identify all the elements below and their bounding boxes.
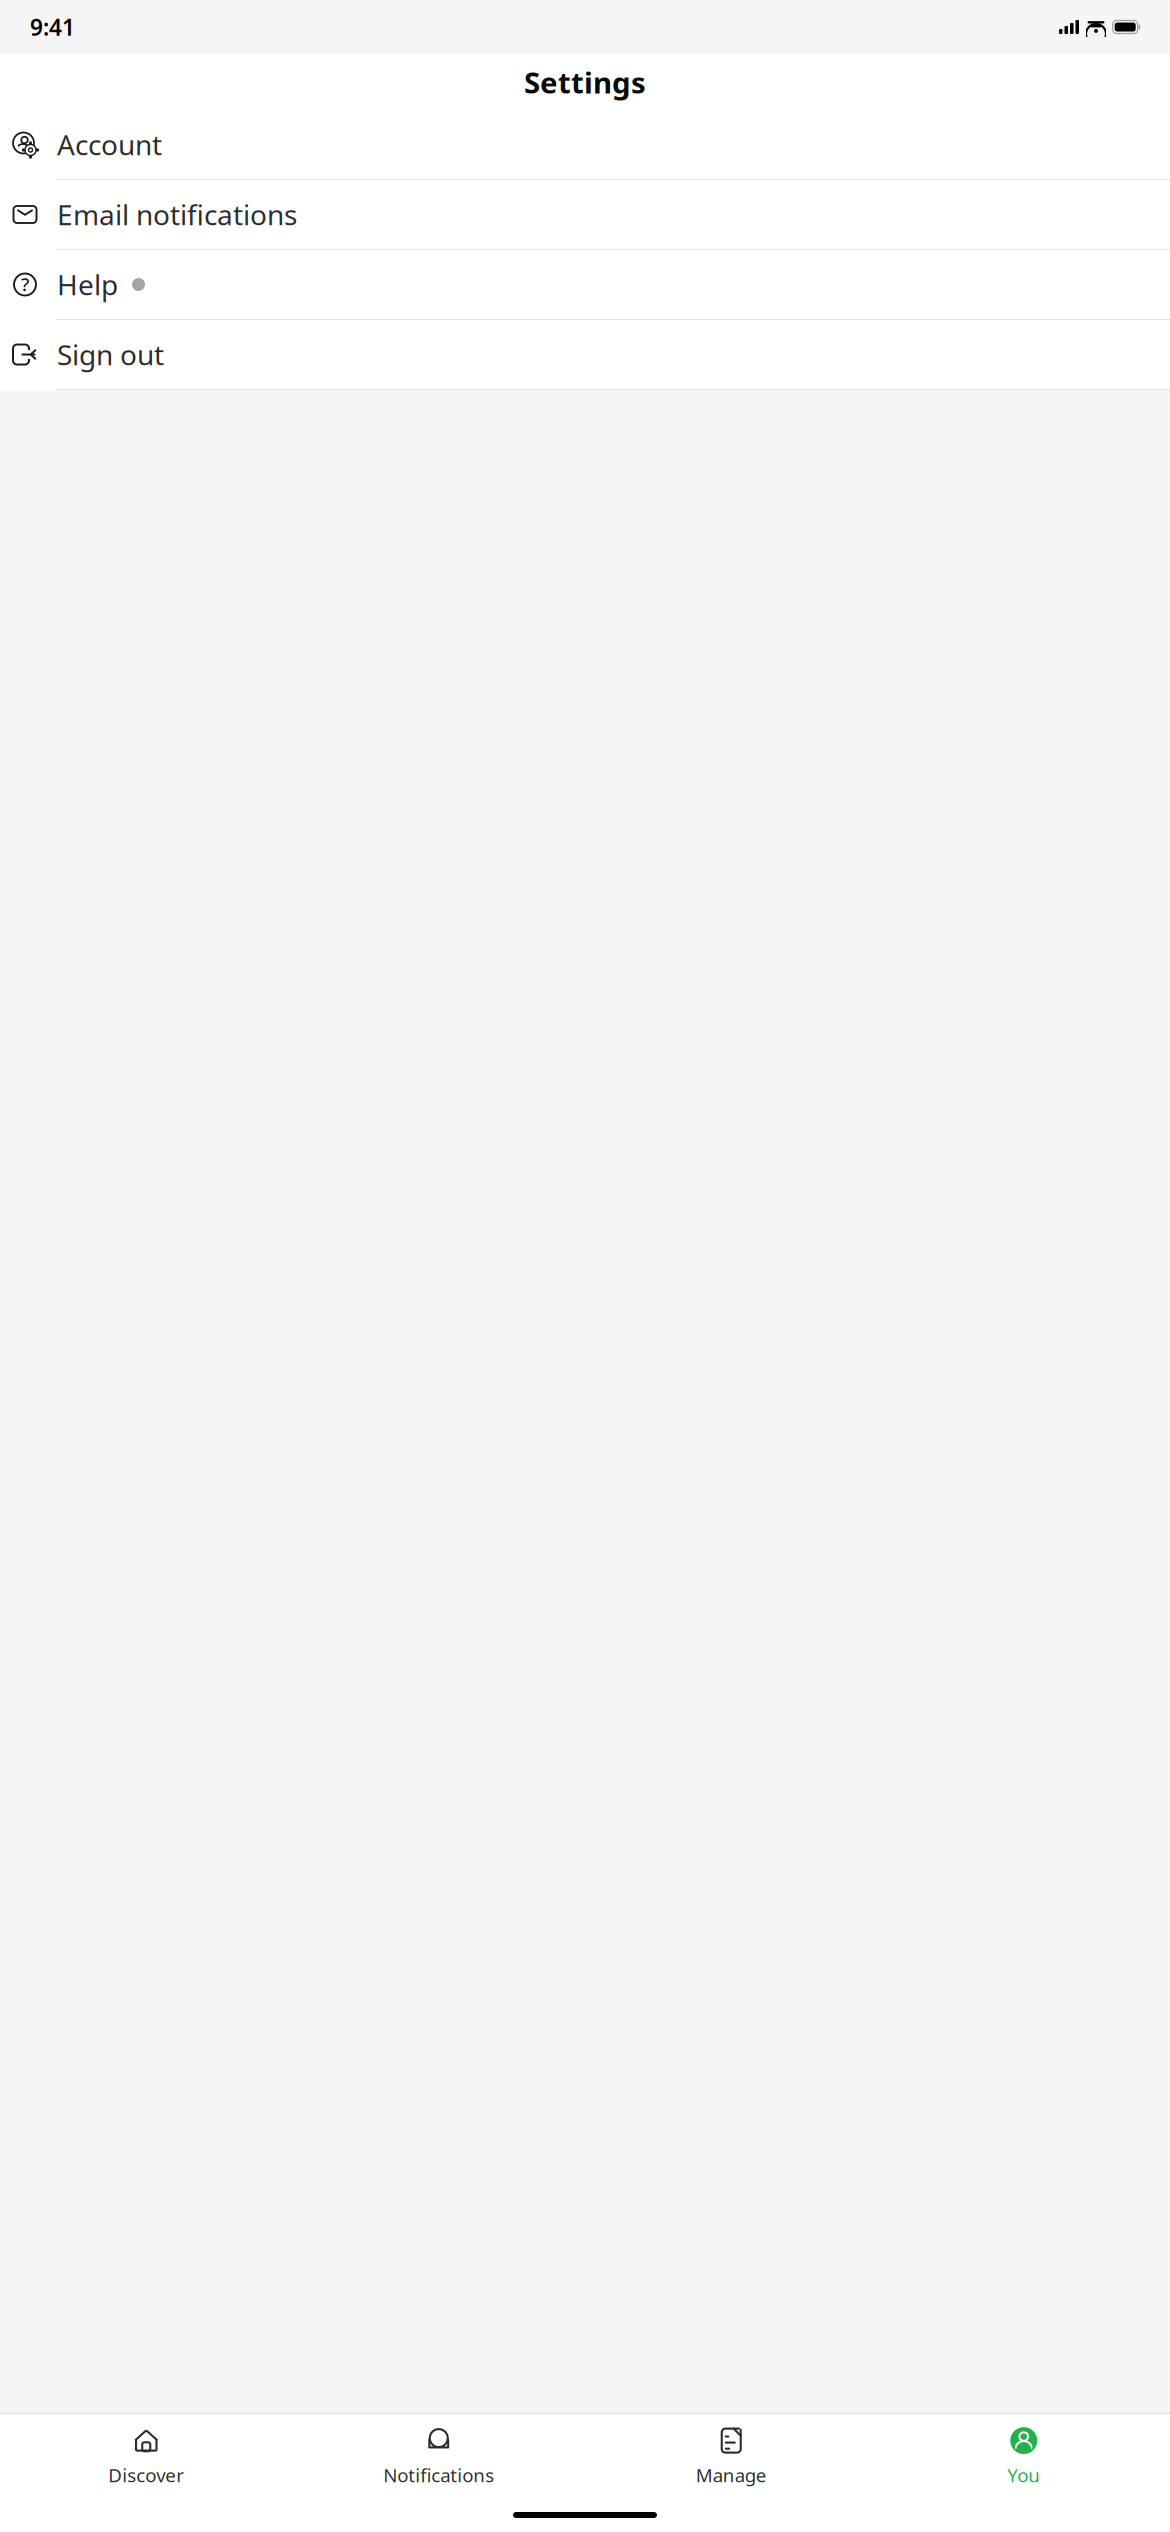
staticText: Account	[57, 126, 162, 163]
staticText: Discover	[108, 2463, 184, 2487]
staticText: Sign out	[57, 336, 164, 373]
button[interactable]: Manage	[585, 2415, 877, 2497]
button[interactable]: Notifications	[292, 2415, 585, 2497]
staticText: Notifications	[383, 2463, 494, 2487]
staticText: Settings	[524, 62, 646, 101]
button[interactable]: You	[877, 2415, 1170, 2497]
staticText: Email notifications	[57, 196, 297, 233]
button[interactable]: Account	[0, 110, 1170, 180]
staticText: Help	[57, 266, 118, 303]
button[interactable]: ?	[0, 250, 1170, 320]
staticText: Manage	[696, 2463, 767, 2487]
staticText: 9:41	[30, 12, 75, 42]
button[interactable]: Email notifications	[0, 180, 1170, 250]
staticText: ?	[21, 272, 29, 296]
staticText: You	[1007, 2463, 1040, 2487]
button[interactable]: Discover	[0, 2415, 292, 2497]
button[interactable]: Sign out	[0, 320, 1170, 390]
